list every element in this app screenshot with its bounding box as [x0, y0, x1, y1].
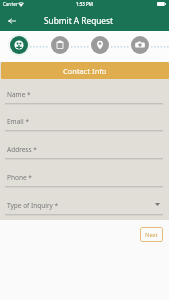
- staticText: Contact Info: [63, 66, 107, 76]
- staticText: Email *: [7, 117, 29, 126]
- button[interactable]: Step 4: [129, 34, 151, 56]
- button[interactable]: Contact Info: [1, 62, 169, 79]
- button[interactable]: Name *: [0, 77, 169, 105]
- staticText: Address *: [7, 145, 37, 154]
- staticText: Type of Inquiry *: [7, 201, 59, 210]
- staticText: Phone *: [7, 173, 32, 182]
- button[interactable]: Phone *: [0, 160, 169, 188]
- button[interactable]: Step 1: [8, 34, 30, 56]
- button[interactable]: Email *: [0, 104, 169, 132]
- button[interactable]: Step 3: [89, 34, 111, 56]
- button[interactable]: Type of Inquiry *: [0, 188, 169, 216]
- button[interactable]: Back: [2, 12, 22, 29]
- button[interactable]: Address *: [0, 132, 169, 160]
- staticText: Name *: [7, 90, 31, 99]
- button[interactable]: Next: [140, 227, 163, 242]
- button[interactable]: Step 2: [49, 34, 71, 56]
- staticText: Submit A Request: [44, 15, 114, 26]
- staticText: Next: [145, 231, 158, 239]
- staticText: 1:53 PM: [76, 1, 93, 7]
- staticText: Carrier: [3, 1, 18, 7]
